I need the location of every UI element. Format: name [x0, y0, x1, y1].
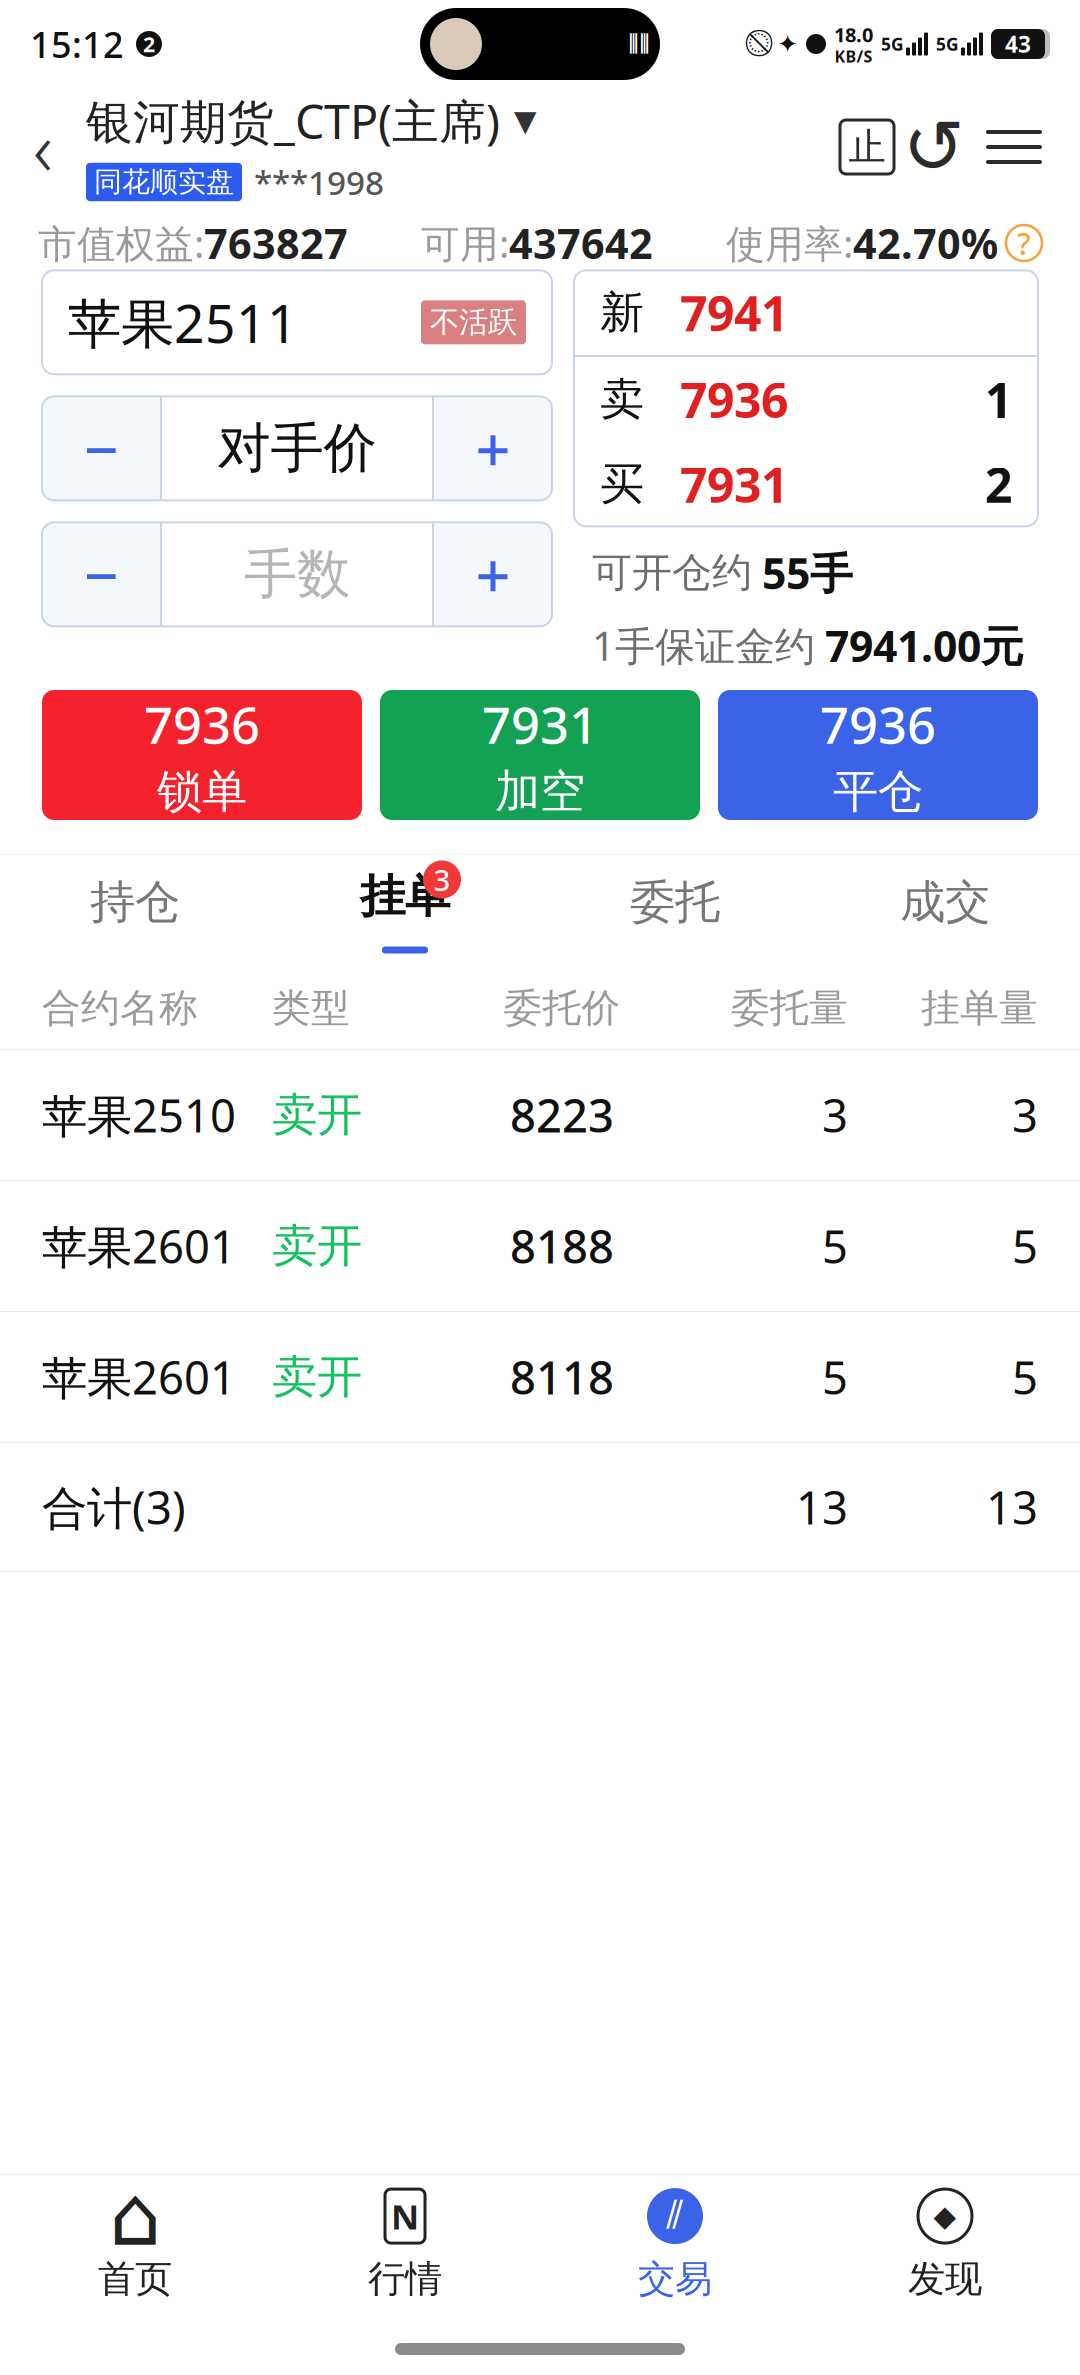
staticText: N	[391, 2193, 419, 2239]
staticText: 新	[600, 286, 644, 340]
button[interactable]: 苹果2601	[0, 1312, 1080, 1442]
staticText: 卖	[600, 372, 644, 426]
button[interactable]: 7936	[718, 690, 1038, 820]
button[interactable]: 止损止盈	[840, 120, 894, 174]
button[interactable]: 使用率说明	[998, 225, 1042, 261]
staticText: 对手价	[217, 416, 376, 481]
staticText: 使用率:	[726, 217, 853, 269]
staticText: 5G	[881, 32, 904, 55]
staticText: 挂单	[360, 869, 450, 924]
staticText: ⃠	[748, 31, 769, 57]
staticText: 发现	[908, 2256, 982, 2302]
staticText: 13	[796, 1477, 848, 1537]
button[interactable]: 苹果2510	[0, 1050, 1080, 1180]
staticText: 15:12	[30, 20, 124, 68]
staticText: 委托量	[731, 984, 848, 1032]
staticText: 42.70%	[853, 216, 998, 270]
staticText: 同花顺实盘	[94, 165, 234, 199]
button[interactable]: 苹果2601	[0, 1181, 1080, 1311]
staticText: 止	[848, 124, 885, 170]
staticText: 交易	[638, 2256, 712, 2302]
button[interactable]: 7936	[42, 690, 362, 820]
button[interactable]: 持仓	[0, 855, 270, 967]
staticText: 买	[600, 457, 644, 511]
staticText: 首页	[98, 2256, 172, 2302]
staticText: 1	[985, 367, 1012, 431]
button[interactable]: 增加	[434, 522, 552, 626]
button[interactable]: 挂单	[270, 855, 540, 967]
button[interactable]: 委托	[540, 855, 810, 967]
staticText: 437642	[509, 216, 653, 270]
staticText: 13	[986, 1477, 1038, 1537]
staticText: 市值权益:	[38, 217, 204, 269]
staticText: 苹果2510	[42, 1085, 236, 1145]
staticText: 平仓	[833, 764, 923, 819]
button[interactable]: 减少	[42, 396, 160, 500]
staticText: 委托价	[503, 984, 620, 1032]
staticText: 持仓	[90, 874, 180, 930]
staticText: 合计(3)	[42, 1477, 186, 1537]
staticText: ✦	[777, 30, 798, 58]
staticText: 3	[822, 1085, 848, 1145]
staticText: 8188	[510, 1216, 614, 1276]
staticText: 苹果2601	[42, 1216, 236, 1276]
staticText: 成交	[900, 874, 990, 930]
staticText: 卖开	[272, 1087, 362, 1143]
staticText: 合约名称	[42, 984, 198, 1032]
staticText: 7941.00元	[825, 617, 1024, 674]
staticText: 苹果2601	[42, 1347, 236, 1407]
staticText: +	[475, 534, 510, 615]
staticText: 7936	[820, 690, 936, 758]
staticText: 5G	[936, 32, 959, 55]
staticText: 不活跃	[430, 304, 517, 340]
button[interactable]: 增加	[434, 396, 552, 500]
staticText: 1手保证金约	[592, 619, 815, 672]
staticText: 7936	[680, 367, 788, 431]
staticText: 55手	[762, 544, 853, 601]
button[interactable]: ⌂	[0, 2175, 270, 2315]
button[interactable]: 返回	[0, 97, 86, 197]
staticText: 2	[985, 452, 1012, 516]
staticText: ⫽	[666, 2197, 684, 2236]
staticText: 类型	[272, 984, 350, 1032]
button[interactable]: 银河期货_CTP(主席)	[86, 90, 537, 204]
staticText: 8223	[510, 1085, 614, 1145]
staticText: ▼	[514, 104, 537, 137]
staticText: 7931	[482, 690, 598, 758]
staticText: 5	[1012, 1347, 1038, 1407]
staticText: 763827	[204, 216, 348, 270]
staticText: 2	[143, 30, 155, 58]
staticText: 7936	[144, 690, 260, 758]
staticText: −	[83, 534, 118, 615]
staticText: 挂单量	[921, 984, 1038, 1032]
staticText: 可开仓约	[592, 548, 752, 597]
staticText: 手数	[244, 542, 350, 607]
staticText: ‹	[33, 97, 53, 197]
button[interactable]: 菜单	[974, 107, 1054, 187]
staticText: 3	[433, 860, 450, 899]
staticText: ***1998	[254, 160, 384, 204]
button[interactable]: ◆	[810, 2175, 1080, 2315]
staticText: 7941	[680, 281, 788, 344]
staticText: 行情	[368, 2256, 442, 2302]
staticText: 3	[1012, 1085, 1038, 1145]
staticText: KB/S	[834, 46, 872, 67]
button[interactable]: 7931	[380, 690, 700, 820]
staticText: 加空	[495, 764, 585, 819]
staticText: 5	[1012, 1216, 1038, 1276]
staticText: 7931	[680, 452, 788, 516]
staticText: 苹果2511	[68, 287, 298, 358]
staticText: ⦀⦀	[628, 32, 650, 56]
staticText: 卖开	[272, 1349, 362, 1405]
button[interactable]: 成交	[810, 855, 1080, 967]
staticText: 卖开	[272, 1218, 362, 1274]
button[interactable]: N	[270, 2175, 540, 2315]
staticText: 银河期货_CTP(主席)	[86, 90, 500, 152]
button[interactable]: ⫽	[540, 2175, 810, 2315]
staticText: +	[475, 408, 510, 489]
staticText: 可用:	[421, 217, 509, 269]
button[interactable]: 刷新	[894, 107, 974, 187]
staticText: 8118	[510, 1347, 614, 1407]
button[interactable]: 减少	[42, 522, 160, 626]
button[interactable]: 苹果2511	[42, 270, 552, 374]
